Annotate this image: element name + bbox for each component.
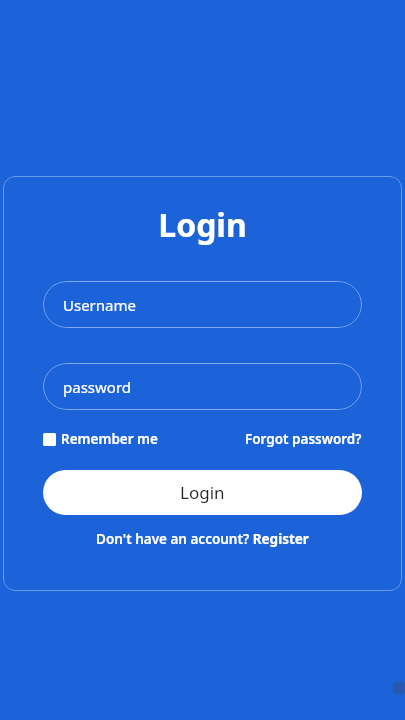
staticText: Username (63, 295, 136, 315)
button[interactable]: Login (43, 470, 362, 515)
staticText: Login (180, 481, 225, 504)
button[interactable]: Don't have an account? Register (43, 530, 362, 548)
staticText: Forgot password? (245, 430, 362, 448)
staticText: Remember me (61, 430, 158, 448)
button[interactable]: Remember me (43, 430, 158, 448)
button[interactable]: Password field (43, 363, 362, 410)
button[interactable]: Username field (43, 281, 362, 328)
staticText: password (63, 377, 131, 397)
staticText: Login (158, 203, 247, 247)
button[interactable]: Forgot password? (245, 430, 362, 448)
staticText: Don't have an account? Register (96, 530, 309, 548)
